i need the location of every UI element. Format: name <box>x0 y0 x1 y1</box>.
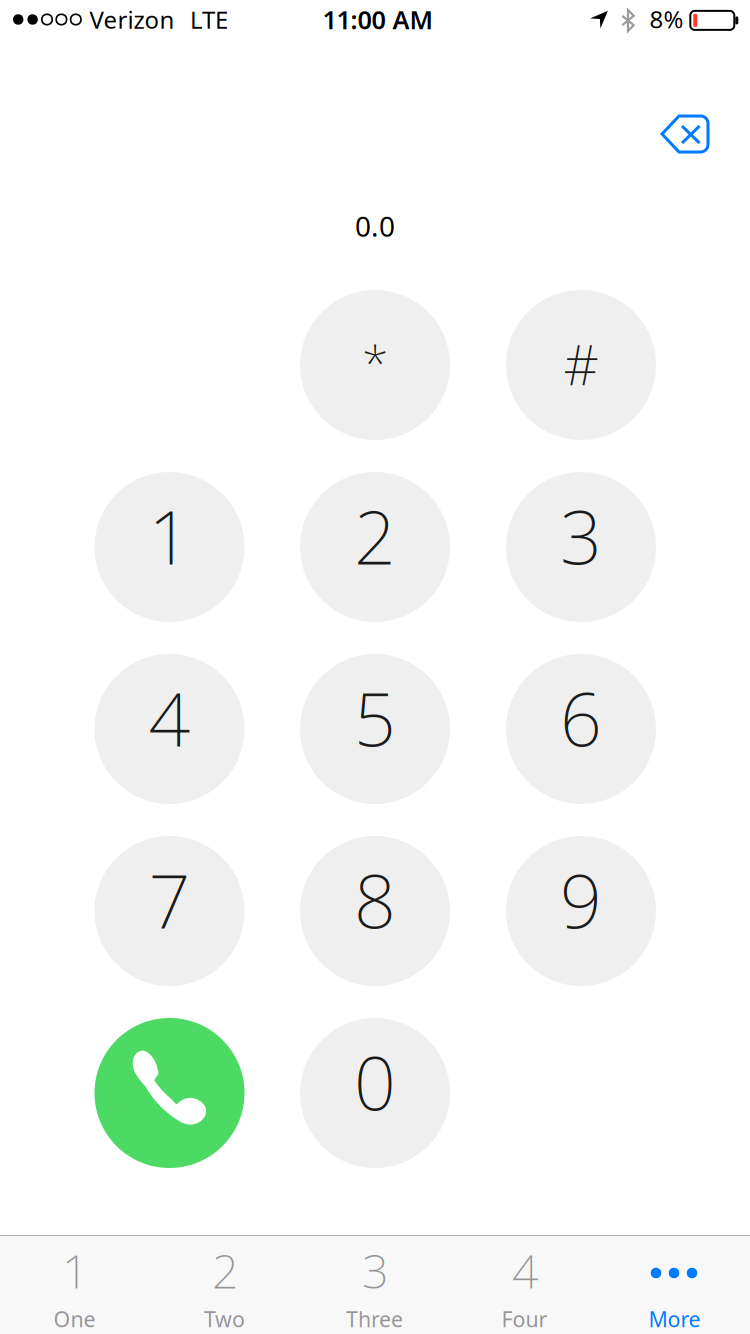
button[interactable]: # <box>506 290 656 440</box>
staticText: LTE <box>190 4 228 35</box>
staticText: 8% <box>649 3 683 35</box>
button[interactable]: 3 <box>300 1236 450 1334</box>
staticText: 1 <box>148 487 190 585</box>
staticText: 2 <box>212 1239 239 1301</box>
staticText: 4 <box>148 669 190 767</box>
staticText: 3 <box>560 487 602 585</box>
button[interactable]: 9 <box>506 836 656 986</box>
button[interactable]: 4 <box>450 1236 600 1334</box>
button[interactable]: 7 <box>94 836 244 986</box>
staticText: One <box>53 1305 95 1333</box>
staticText: 1 <box>62 1239 89 1301</box>
staticText: 5 <box>354 669 396 767</box>
staticText: # <box>563 328 598 400</box>
staticText: 3 <box>362 1239 389 1301</box>
staticText: 8 <box>354 851 396 949</box>
button[interactable]: 5 <box>300 654 450 804</box>
button[interactable]: 8 <box>300 836 450 986</box>
staticText: * <box>362 331 388 395</box>
button[interactable]: * <box>300 290 450 440</box>
button[interactable]: More <box>600 1236 750 1334</box>
button[interactable]: 1 <box>0 1236 150 1334</box>
staticText: 7 <box>148 851 190 949</box>
button[interactable]: 6 <box>506 654 656 804</box>
staticText: More <box>648 1305 700 1333</box>
button[interactable]: 0 <box>300 1018 450 1168</box>
staticText: 2 <box>354 487 396 585</box>
staticText: Two <box>204 1305 245 1333</box>
button[interactable]: 2 <box>150 1236 300 1334</box>
staticText: 0.0 <box>355 207 395 245</box>
staticText: Verizon <box>89 4 174 35</box>
staticText: 4 <box>512 1239 539 1301</box>
button[interactable]: Call <box>94 1018 244 1168</box>
staticText: Three <box>346 1305 403 1333</box>
button[interactable]: 2 <box>300 472 450 622</box>
staticText: 6 <box>560 669 602 767</box>
button[interactable]: 1 <box>94 472 244 622</box>
button[interactable]: Delete <box>638 92 731 175</box>
button[interactable]: 3 <box>506 472 656 622</box>
staticText: Four <box>501 1305 547 1333</box>
staticText: 0 <box>354 1033 396 1131</box>
staticText: 11:00 AM <box>322 3 433 36</box>
staticText: 9 <box>560 851 602 949</box>
button[interactable]: 4 <box>94 654 244 804</box>
